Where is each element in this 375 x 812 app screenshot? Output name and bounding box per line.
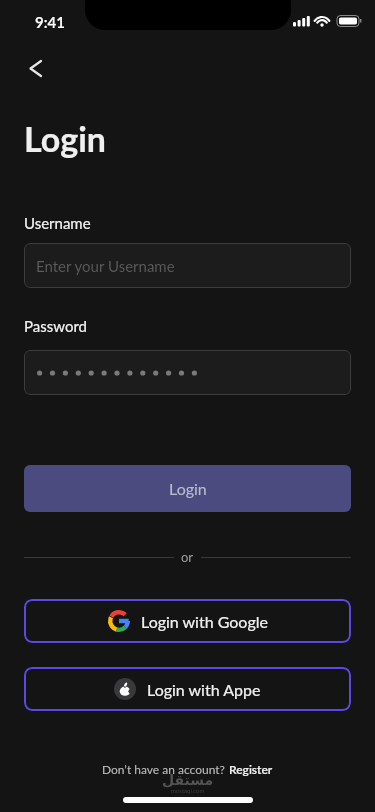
staticText: Login bbox=[169, 479, 207, 498]
button[interactable]: Login with Appe bbox=[24, 667, 351, 711]
staticText: مستقل bbox=[162, 772, 214, 788]
button[interactable]: Enter your Username bbox=[24, 243, 351, 288]
button[interactable]: Login with Google bbox=[24, 599, 351, 643]
staticText: 9:41 bbox=[35, 13, 65, 31]
staticText: Login with Google bbox=[141, 612, 268, 631]
button[interactable]: Don’t have an account? bbox=[102, 762, 273, 776]
staticText: Password bbox=[24, 317, 87, 335]
staticText: Login bbox=[24, 118, 106, 159]
staticText: mostaql.com bbox=[171, 787, 205, 794]
button[interactable] bbox=[24, 54, 52, 82]
staticText: Enter your Username bbox=[36, 257, 175, 275]
staticText: Don’t have an account? bbox=[102, 762, 229, 776]
staticText: Login with Appe bbox=[147, 680, 261, 699]
button[interactable] bbox=[24, 350, 351, 395]
staticText: Username bbox=[24, 214, 91, 232]
staticText: Register bbox=[229, 762, 273, 776]
button[interactable]: Login bbox=[24, 465, 351, 512]
staticText: or bbox=[181, 549, 194, 565]
